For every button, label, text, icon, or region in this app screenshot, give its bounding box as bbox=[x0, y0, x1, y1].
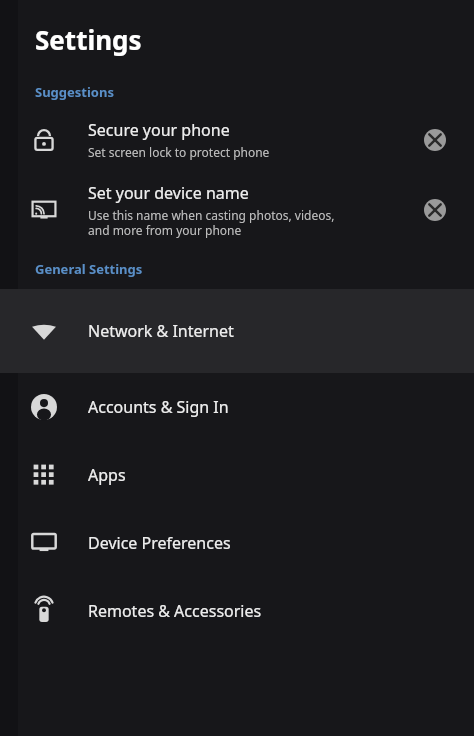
button[interactable]: Apps bbox=[0, 441, 474, 509]
button[interactable]: Network & Internet bbox=[0, 289, 474, 373]
button[interactable]: Accounts & Sign In bbox=[0, 373, 474, 441]
button[interactable]: Set your device name bbox=[0, 182, 474, 238]
staticText: Set your device name bbox=[88, 182, 249, 204]
staticText: Set screen lock to protect phone bbox=[88, 144, 270, 160]
staticText: Use this name when casting photos, video… bbox=[88, 207, 335, 238]
staticText: Apps bbox=[88, 464, 126, 486]
staticText: Accounts & Sign In bbox=[88, 396, 229, 418]
staticText: Remotes & Accessories bbox=[88, 600, 262, 622]
button[interactable]: Secure your phone bbox=[0, 119, 474, 160]
staticText: Settings bbox=[35, 22, 142, 57]
button[interactable]: Dismiss suggestion bbox=[418, 123, 452, 157]
button[interactable]: Dismiss suggestion bbox=[418, 193, 452, 227]
staticText: Secure your phone bbox=[88, 119, 230, 141]
button[interactable]: Device Preferences bbox=[0, 509, 474, 577]
staticText: Suggestions bbox=[35, 83, 114, 101]
button[interactable]: Remotes & Accessories bbox=[0, 577, 474, 645]
staticText: General Settings bbox=[35, 260, 143, 278]
staticText: Device Preferences bbox=[88, 532, 231, 554]
staticText: Network & Internet bbox=[88, 320, 234, 342]
